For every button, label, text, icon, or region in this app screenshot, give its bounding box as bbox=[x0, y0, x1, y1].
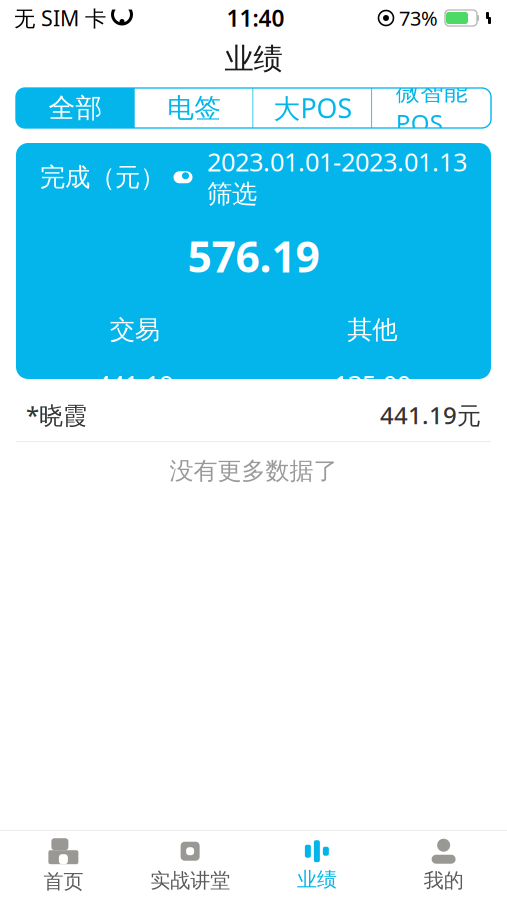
staticText: 我的 bbox=[424, 868, 464, 893]
staticText: 2023.01.01-2023.01.13 筛选 bbox=[207, 145, 467, 210]
staticText: 电签 bbox=[167, 92, 221, 124]
button[interactable]: 电签 bbox=[135, 88, 254, 128]
button[interactable]: Toggle amount visibility bbox=[40, 162, 193, 193]
staticText: 大POS bbox=[273, 90, 352, 126]
button[interactable]: 大POS bbox=[253, 88, 372, 128]
button[interactable]: 全部 bbox=[16, 88, 135, 128]
staticText: 576.19 bbox=[187, 228, 319, 284]
button[interactable]: 首页 bbox=[0, 831, 127, 899]
staticText: 其他 bbox=[347, 314, 397, 345]
button[interactable]: 业绩 bbox=[253, 831, 380, 899]
staticText: 业绩 bbox=[224, 41, 282, 77]
button[interactable]: 实战讲堂 bbox=[127, 831, 254, 899]
button[interactable]: 我的 bbox=[380, 831, 507, 899]
button[interactable]: 微智能POS bbox=[372, 88, 491, 128]
button[interactable]: 2023.01.01-2023.01.13 筛选 bbox=[207, 145, 467, 210]
staticText: 业绩 bbox=[297, 867, 337, 892]
staticText: 135.00 bbox=[334, 367, 411, 401]
staticText: 11:40 bbox=[226, 3, 284, 33]
staticText: 交易 bbox=[110, 314, 160, 345]
staticText: 全部 bbox=[48, 92, 102, 124]
button[interactable]: *晓霞 bbox=[16, 389, 491, 441]
staticText: 73% bbox=[399, 5, 438, 31]
staticText: 完成（元） bbox=[40, 162, 165, 193]
staticText: 微智能POS bbox=[396, 77, 468, 139]
staticText: 没有更多数据了 bbox=[169, 456, 337, 486]
staticText: 441.19 bbox=[96, 367, 173, 401]
staticText: 首页 bbox=[43, 869, 83, 894]
staticText: 无 SIM 卡 bbox=[14, 4, 106, 32]
staticText: 441.19元 bbox=[380, 399, 481, 431]
staticText: *晓霞 bbox=[26, 399, 87, 431]
staticText: 实战讲堂 bbox=[150, 868, 230, 893]
